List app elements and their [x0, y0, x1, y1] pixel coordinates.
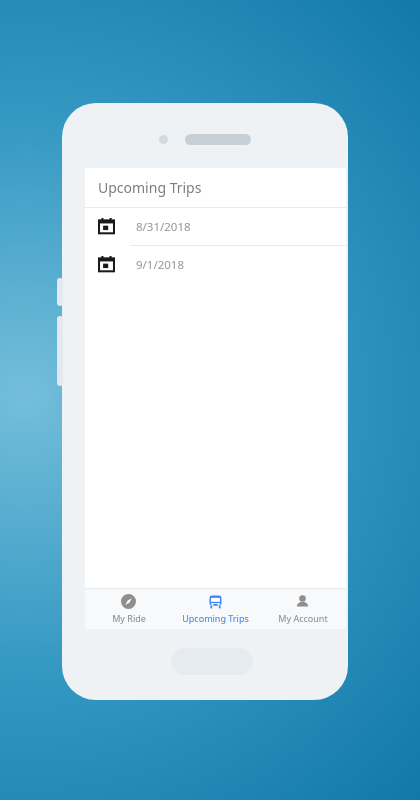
button[interactable]: Upcoming Trips [85, 168, 346, 207]
button[interactable]: 9/1/2018 [85, 246, 346, 283]
staticText: My Account [278, 612, 328, 624]
staticText: Upcoming Trips [98, 178, 202, 197]
button[interactable]: 8/31/2018 [85, 208, 346, 245]
other: My Ride [121, 594, 136, 609]
staticText: My Ride [112, 612, 146, 624]
button[interactable]: My Account [259, 589, 346, 629]
other: Upcoming Trips [208, 594, 223, 609]
other: My Account [295, 594, 310, 609]
button[interactable]: Upcoming Trips [172, 589, 259, 629]
staticText: 9/1/2018 [136, 257, 185, 273]
button[interactable]: My Ride [85, 589, 172, 629]
staticText: 8/31/2018 [136, 219, 191, 235]
staticText: Upcoming Trips [182, 612, 249, 624]
